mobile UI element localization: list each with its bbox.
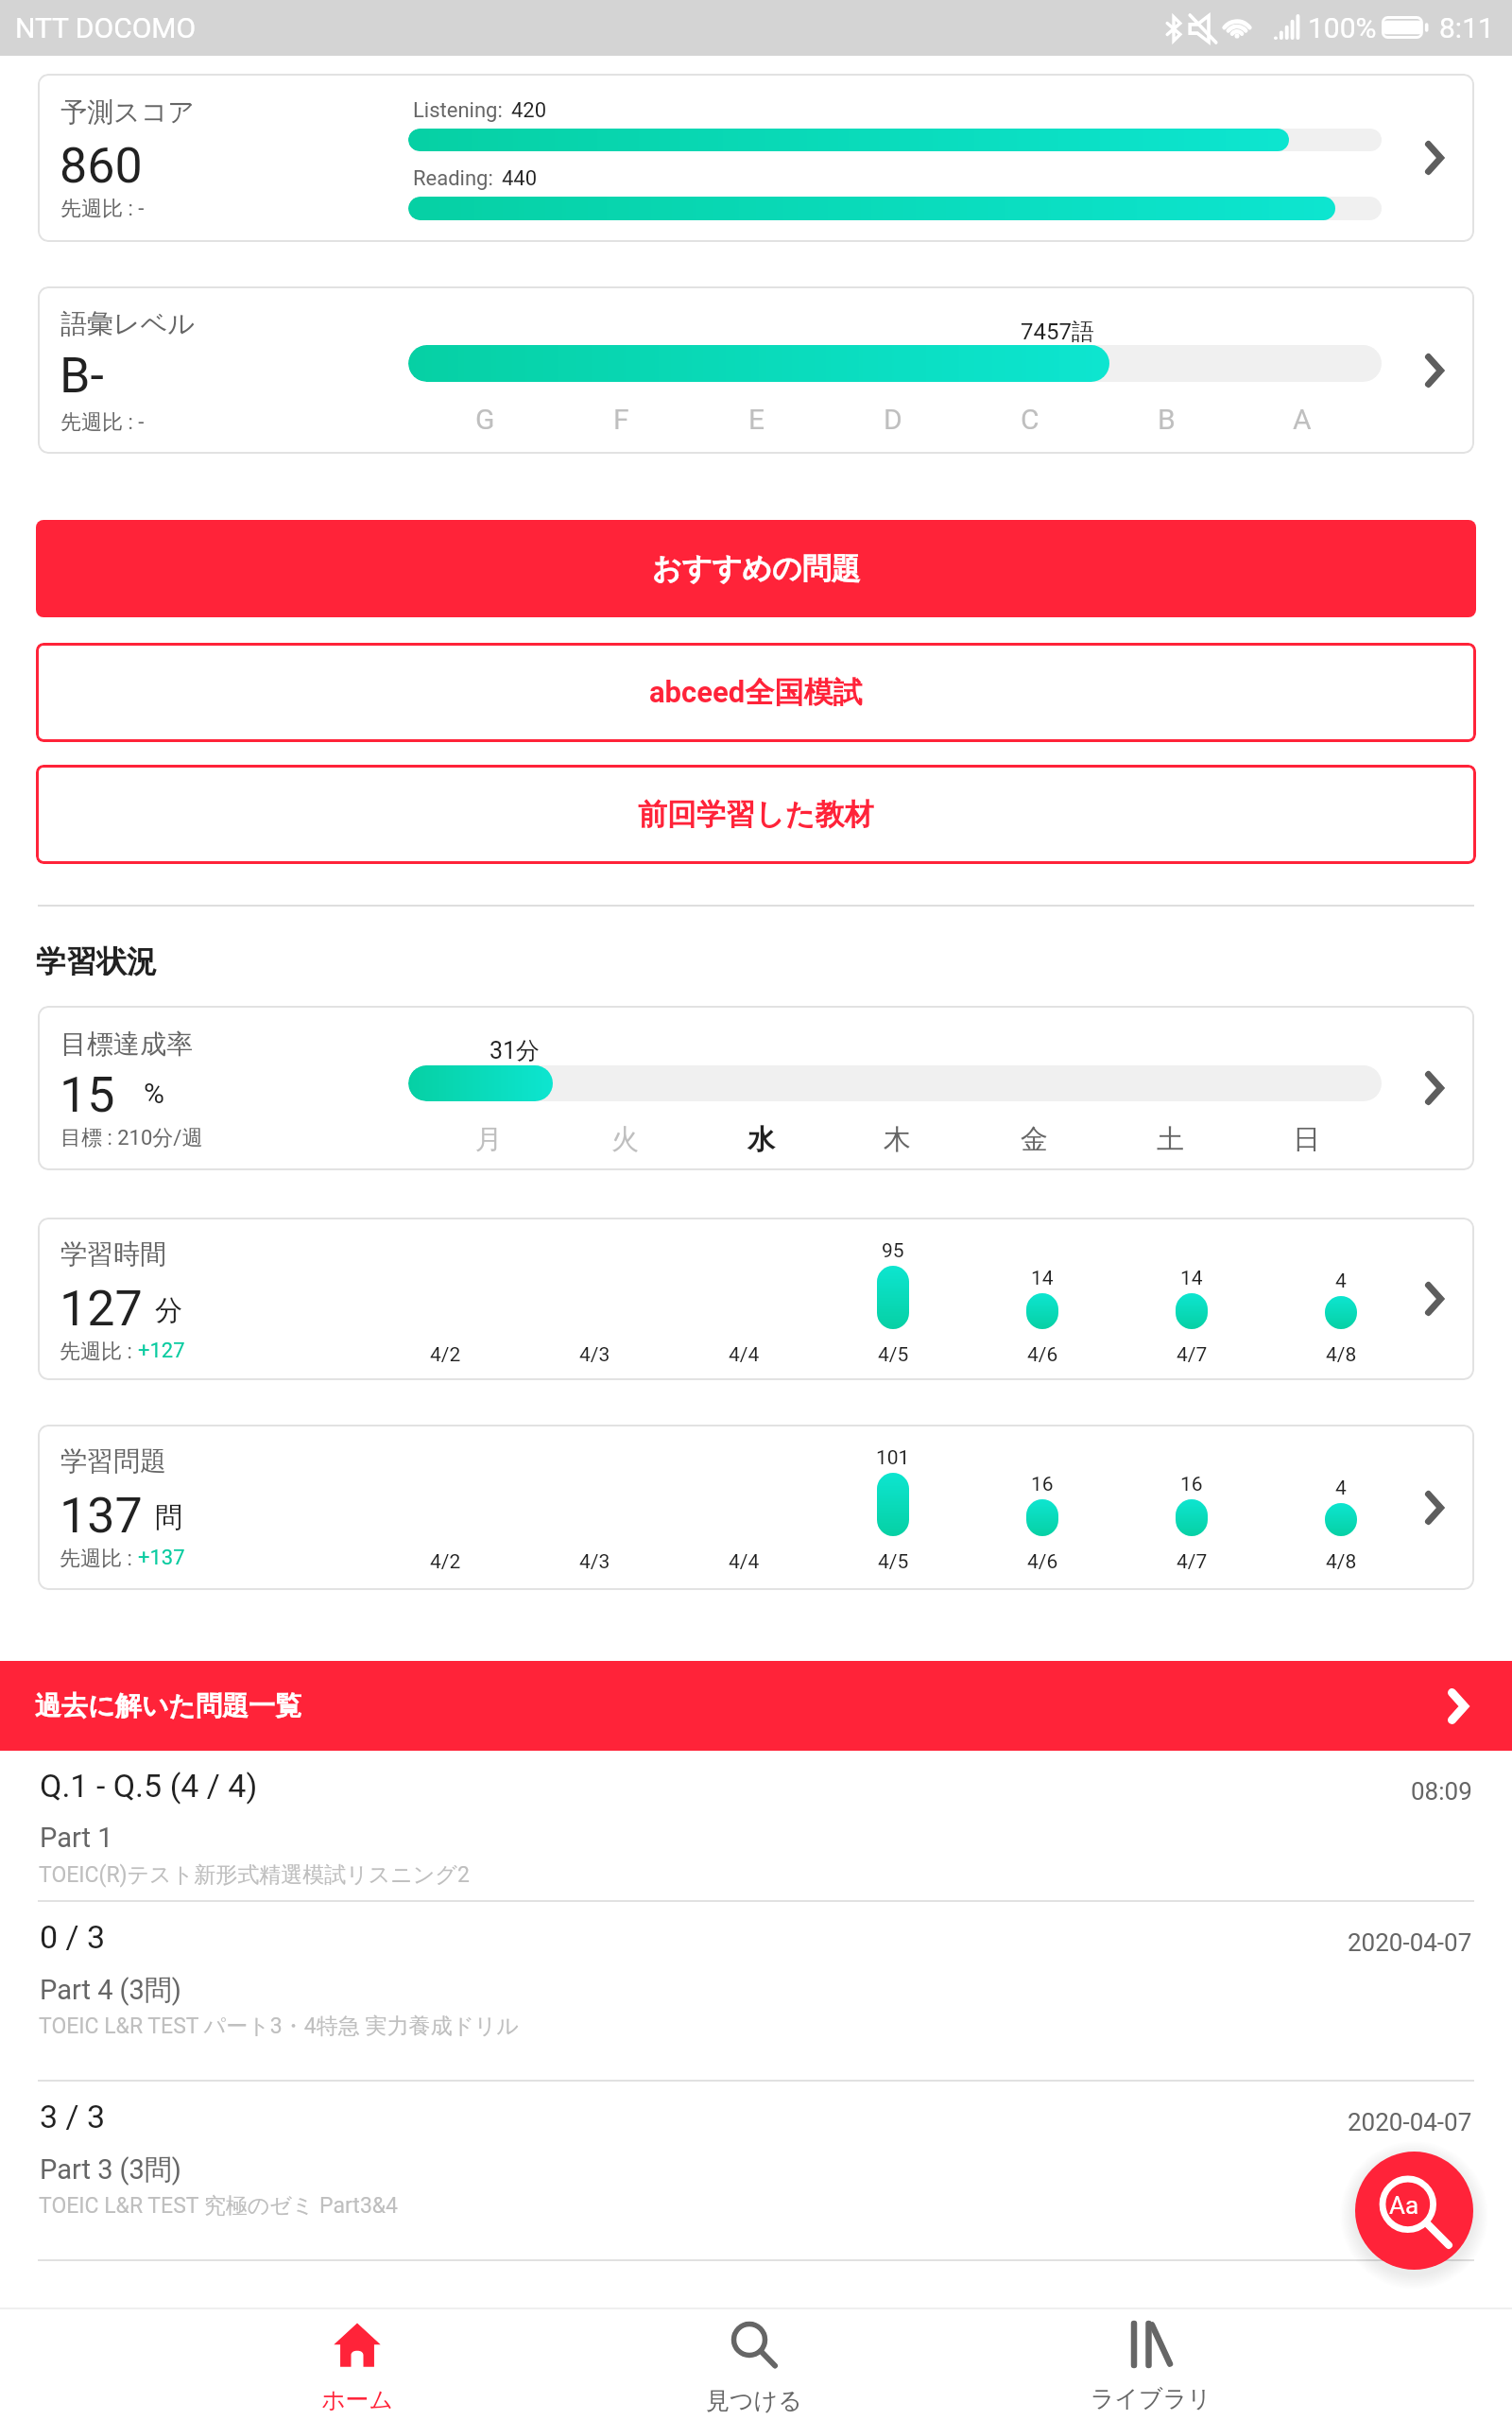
button[interactable]: 予測スコア (38, 74, 1474, 242)
staticText: 4/2 (430, 1343, 461, 1367)
button[interactable]: Word search (1355, 2152, 1473, 2270)
staticText: C (1021, 403, 1039, 433)
staticText: 0 / 3 (40, 1918, 106, 1956)
staticText: 31分 (490, 1036, 541, 1065)
staticText: 08:09 (1411, 1777, 1472, 1806)
staticText: おすすめの問題 (652, 550, 861, 587)
staticText: ホーム (321, 2385, 394, 2414)
staticText: Part 4 (3問) (40, 1973, 181, 2008)
staticText: +127 (138, 1339, 185, 1363)
button[interactable]: 前回学習した教材 (36, 765, 1476, 864)
staticText: 先週比 : - (60, 196, 145, 222)
button[interactable]: おすすめの問題 (36, 520, 1476, 617)
staticText: Reading: (413, 166, 493, 191)
staticText: 4/7 (1177, 1550, 1208, 1574)
staticText: 過去に解いた問題一覧 (35, 1689, 301, 1722)
staticText: 4/7 (1177, 1343, 1208, 1367)
staticText: Listening: (413, 98, 503, 123)
staticText: 101 (876, 1446, 910, 1470)
staticText: Aa (1389, 2191, 1419, 2220)
staticText: B- (60, 347, 104, 405)
staticText: 4/5 (878, 1550, 909, 1574)
staticText: +137 (138, 1546, 185, 1570)
staticText: 土 (1157, 1122, 1184, 1157)
staticText: 前回学習した教材 (638, 796, 874, 833)
staticText: 15 (60, 1066, 115, 1124)
staticText: % (144, 1077, 164, 1110)
button[interactable]: 学習時間 (38, 1218, 1474, 1380)
staticText: 先週比 : (60, 1339, 138, 1365)
staticText: G (475, 403, 495, 433)
staticText: Q.1 - Q.5 (4 / 4) (40, 1767, 258, 1805)
staticText: 4/4 (729, 1550, 760, 1574)
button[interactable]: 学習問題 (38, 1425, 1474, 1590)
staticText: 14 (1180, 1267, 1203, 1290)
staticText: 目標 : 210分/週 (60, 1125, 203, 1151)
staticText: 月 (475, 1122, 503, 1157)
staticText: 137 (60, 1487, 143, 1545)
staticText: 木 (884, 1122, 911, 1157)
button[interactable]: 過去に解いた問題一覧 (0, 1661, 1512, 1751)
staticText: 3 / 3 (40, 2098, 106, 2135)
staticText: 4/8 (1326, 1550, 1357, 1574)
staticText: 分 (155, 1293, 182, 1328)
staticText: 4/6 (1027, 1550, 1058, 1574)
staticText: 4/2 (430, 1550, 461, 1574)
staticText: 127 (60, 1280, 143, 1338)
staticText: 見つける (706, 2386, 802, 2415)
button[interactable]: 見つける (664, 2308, 844, 2420)
staticText: D (884, 403, 902, 433)
staticText: 先週比 : - (60, 409, 145, 436)
button[interactable]: abceed全国模試 (36, 643, 1476, 742)
staticText: NTT DOCOMO (15, 11, 197, 44)
staticText: 学習時間 (60, 1237, 166, 1270)
staticText: 予測スコア (60, 95, 195, 129)
button[interactable]: Q.1 - Q.5 (4 / 4) (0, 1751, 1512, 1902)
staticText: abceed全国模試 (649, 674, 863, 711)
staticText: 16 (1031, 1473, 1054, 1496)
staticText: 95 (882, 1239, 904, 1263)
button[interactable]: 語彙レベル (38, 286, 1474, 454)
staticText: 4/3 (579, 1550, 610, 1574)
staticText: 2020-04-07 (1348, 1928, 1472, 1957)
staticText: 7457語 (1021, 318, 1094, 346)
staticText: TOEIC(R)テスト新形式精選模試リスニング2 (39, 1861, 470, 1889)
staticText: 学習状況 (36, 942, 157, 980)
staticText: Part 1 (40, 1822, 113, 1854)
staticText: 8:11 (1439, 11, 1494, 44)
staticText: 4 (1335, 1270, 1347, 1293)
staticText: 4/8 (1326, 1343, 1357, 1367)
staticText: 火 (611, 1122, 639, 1157)
button[interactable]: 3 / 3 (0, 2082, 1512, 2261)
staticText: A (1293, 403, 1312, 433)
staticText: 水 (747, 1122, 775, 1157)
staticText: 学習問題 (60, 1444, 166, 1478)
staticText: 語彙レベル (60, 307, 195, 340)
button[interactable]: ライブラリ (1061, 2308, 1241, 2420)
staticText: 2020-04-07 (1348, 2108, 1472, 2136)
staticText: 420 (511, 98, 547, 123)
staticText: TOEIC L&R TEST 究極のゼミ Part3&4 (39, 2192, 399, 2220)
button[interactable]: ホーム (267, 2308, 447, 2420)
button[interactable]: 目標達成率 (38, 1006, 1474, 1170)
staticText: 4/3 (579, 1343, 610, 1367)
staticText: Part 3 (3問) (40, 2152, 181, 2187)
staticText: 860 (60, 137, 143, 195)
staticText: ライブラリ (1091, 2384, 1211, 2413)
staticText: 4/6 (1027, 1343, 1058, 1367)
staticText: 100% (1308, 11, 1377, 44)
staticText: 14 (1031, 1267, 1054, 1290)
staticText: 問 (155, 1500, 182, 1535)
staticText: 16 (1180, 1473, 1203, 1496)
staticText: 4/5 (878, 1343, 909, 1367)
button[interactable]: 0 / 3 (0, 1902, 1512, 2082)
staticText: F (613, 403, 629, 433)
staticText: 日 (1293, 1122, 1320, 1157)
staticText: 金 (1021, 1122, 1048, 1157)
staticText: B (1158, 403, 1176, 433)
staticText: 先週比 : (60, 1546, 138, 1572)
staticText: 4/4 (729, 1343, 760, 1367)
staticText: TOEIC L&R TEST パート3・4特急 実力養成ドリル (39, 2013, 520, 2040)
staticText: 440 (502, 166, 538, 191)
staticText: 目標達成率 (60, 1028, 193, 1061)
